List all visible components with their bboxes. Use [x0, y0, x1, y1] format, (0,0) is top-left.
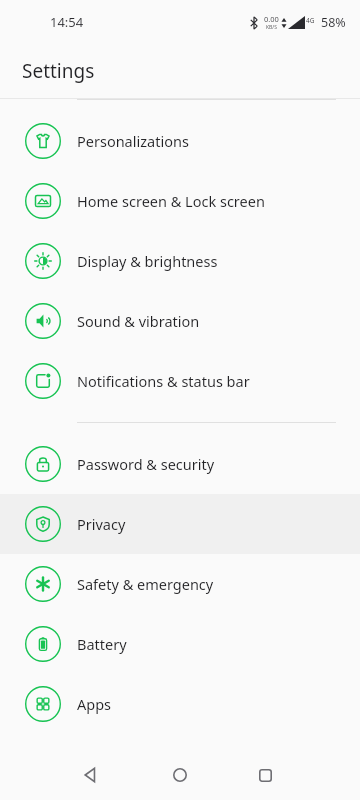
button[interactable]: Home screen & Lock screen	[0, 171, 360, 231]
button[interactable]: Notifications & status bar	[0, 351, 360, 411]
staticText: 14:54	[50, 13, 84, 31]
staticText: 0.00	[264, 14, 279, 24]
staticText: Password & security	[77, 454, 215, 474]
button[interactable]: Display & brightness	[0, 231, 360, 291]
staticText: Settings	[22, 58, 95, 84]
staticText: Battery	[77, 634, 127, 654]
staticText: Safety & emergency	[77, 574, 214, 594]
staticText: Notifications & status bar	[77, 371, 250, 391]
button[interactable]: Password & security	[0, 434, 360, 494]
staticText: KB/S	[266, 24, 277, 31]
button[interactable]: Back	[74, 759, 106, 791]
button[interactable]: Battery	[0, 614, 360, 674]
staticText: 4G	[306, 16, 315, 25]
button[interactable]: Recent apps	[249, 759, 281, 791]
staticText: Privacy	[77, 514, 126, 534]
button[interactable]: Home	[164, 759, 196, 791]
staticText: Personalizations	[77, 131, 189, 151]
staticText: Home screen & Lock screen	[77, 191, 265, 211]
button[interactable]: Privacy	[0, 494, 360, 554]
button[interactable]: Apps	[0, 674, 360, 734]
button[interactable]: Personalizations	[0, 111, 360, 171]
button[interactable]: Sound & vibration	[0, 291, 360, 351]
staticText: 58%	[321, 14, 346, 31]
staticText: Apps	[77, 694, 112, 714]
button[interactable]: Safety & emergency	[0, 554, 360, 614]
staticText: Display & brightness	[77, 251, 218, 271]
staticText: Sound & vibration	[77, 311, 200, 331]
